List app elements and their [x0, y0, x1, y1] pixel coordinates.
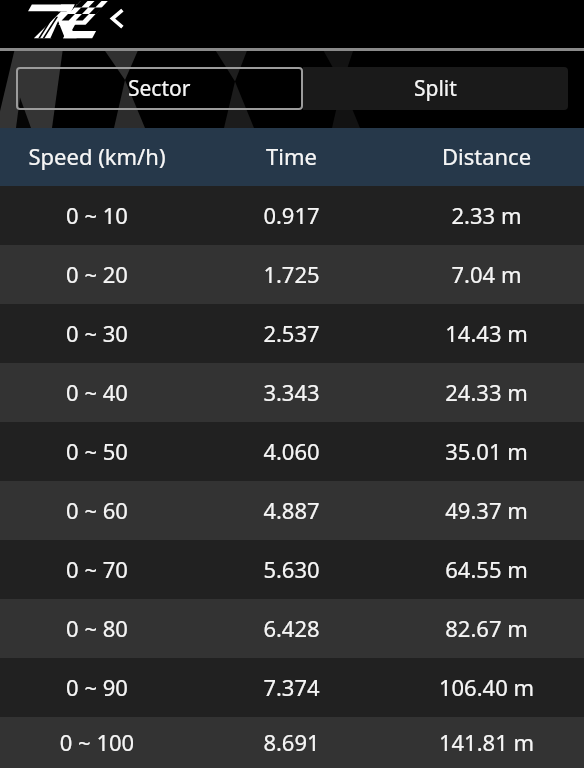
- button[interactable]: Sector: [16, 67, 303, 110]
- button[interactable]: 0 ~ 10: [0, 186, 584, 245]
- staticText: 0 ~ 20: [0, 259, 194, 289]
- staticText: 14.43 m: [389, 318, 584, 348]
- button[interactable]: 0 ~ 70: [0, 540, 584, 599]
- staticText: Distance: [389, 141, 584, 171]
- staticText: 35.01 m: [389, 436, 584, 466]
- staticText: 49.37 m: [389, 495, 584, 525]
- staticText: 3.343: [194, 377, 389, 407]
- staticText: 0 ~ 70: [0, 554, 194, 584]
- staticText: 24.33 m: [389, 377, 584, 407]
- staticText: 0 ~ 40: [0, 377, 194, 407]
- button[interactable]: 0 ~ 20: [0, 245, 584, 304]
- staticText: 2.537: [194, 318, 389, 348]
- staticText: 5.630: [194, 554, 389, 584]
- staticText: 64.55 m: [389, 554, 584, 584]
- button[interactable]: 0 ~ 80: [0, 599, 584, 658]
- staticText: 0.917: [194, 200, 389, 230]
- staticText: 0 ~ 50: [0, 436, 194, 466]
- staticText: 0 ~ 10: [0, 200, 194, 230]
- staticText: 1.725: [194, 259, 389, 289]
- staticText: Sector: [128, 74, 191, 103]
- staticText: 82.67 m: [389, 613, 584, 643]
- staticText: 141.81 m: [389, 727, 584, 757]
- staticText: 0 ~ 60: [0, 495, 194, 525]
- button[interactable]: 0 ~ 40: [0, 363, 584, 422]
- button[interactable]: 0 ~ 60: [0, 481, 584, 540]
- staticText: 7.04 m: [389, 259, 584, 289]
- button[interactable]: 0 ~ 30: [0, 304, 584, 363]
- staticText: Time: [194, 141, 389, 171]
- staticText: 0 ~ 30: [0, 318, 194, 348]
- staticText: Speed (km/h): [0, 141, 194, 171]
- button[interactable]: 0 ~ 90: [0, 658, 584, 717]
- staticText: 4.060: [194, 436, 389, 466]
- staticText: 7.374: [194, 672, 389, 702]
- staticText: 8.691: [194, 727, 389, 757]
- staticText: 4.887: [194, 495, 389, 525]
- button[interactable]: Split: [303, 67, 568, 110]
- staticText: 0 ~ 90: [0, 672, 194, 702]
- button[interactable]: 0 ~ 50: [0, 422, 584, 481]
- staticText: 0 ~ 80: [0, 613, 194, 643]
- staticText: Split: [414, 74, 457, 103]
- staticText: 0 ~ 100: [0, 727, 194, 757]
- button[interactable]: 0 ~ 100: [0, 717, 584, 768]
- staticText: 2.33 m: [389, 200, 584, 230]
- staticText: 106.40 m: [389, 672, 584, 702]
- button[interactable]: Back: [99, 0, 139, 40]
- staticText: 6.428: [194, 613, 389, 643]
